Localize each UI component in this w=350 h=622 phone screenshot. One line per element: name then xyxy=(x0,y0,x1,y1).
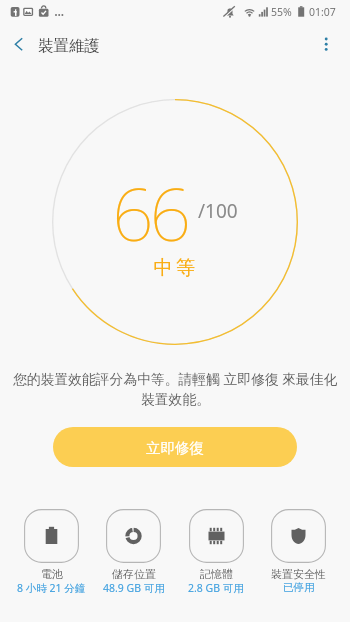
button[interactable]: Navigate up xyxy=(0,24,38,66)
staticText: 48.9 GB 可用 xyxy=(103,581,165,595)
staticText: 2.8 GB 可用 xyxy=(188,581,244,595)
staticText: 立即修復 xyxy=(146,439,204,457)
staticText: 裝置維護 xyxy=(38,36,100,56)
staticText: 裝置效能。 xyxy=(141,391,210,408)
staticText: /100 xyxy=(198,198,238,224)
staticText: 8 小時 21 分鐘 xyxy=(17,581,86,595)
button[interactable]: More options xyxy=(310,24,350,66)
staticText: 記憶體 xyxy=(200,567,233,581)
staticText: 01:07 xyxy=(309,5,336,19)
button[interactable]: 儲存位置 xyxy=(106,509,161,563)
button[interactable]: 電池 xyxy=(24,509,79,563)
staticText: 您的裝置效能評分為中等。請輕觸 立即修復 來最佳化 xyxy=(13,369,338,388)
staticText: 電池 xyxy=(41,567,63,581)
staticText: 儲存位置 xyxy=(112,567,156,581)
button[interactable]: 裝置安全性 xyxy=(271,509,326,563)
staticText: 中等 xyxy=(152,255,197,280)
staticText: 55% xyxy=(271,5,292,19)
staticText: 裝置安全性 xyxy=(271,567,326,581)
button[interactable]: 記憶體 xyxy=(189,509,244,563)
staticText: 已停用 xyxy=(283,581,315,594)
button[interactable]: 立即修復 xyxy=(53,427,297,467)
staticText: 66 xyxy=(112,163,188,262)
